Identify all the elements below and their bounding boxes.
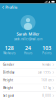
button[interactable]: Birthday <box>0 69 56 77</box>
staticText: Sarah Miller <box>16 31 39 37</box>
button[interactable]: Set goal <box>0 92 56 99</box>
staticText: Hours <box>24 51 32 55</box>
button[interactable]: 128 <box>0 45 19 55</box>
staticText: Profile <box>5 5 17 10</box>
staticText: Height <box>3 78 13 82</box>
staticText: Female <box>42 63 51 66</box>
staticText: Weight <box>3 86 13 90</box>
button[interactable]: Weight <box>0 84 56 92</box>
button[interactable]: 24 <box>19 45 37 55</box>
staticText: 24 <box>25 44 31 51</box>
staticText: Birthday <box>3 71 14 74</box>
staticText: Jan 1995 <box>38 71 51 74</box>
staticText: 168 cm <box>41 78 51 82</box>
button[interactable]: 103 <box>37 45 56 55</box>
button[interactable]: Height <box>0 76 56 84</box>
staticText: Workouts <box>3 51 15 55</box>
staticText: Points <box>42 51 51 55</box>
button[interactable]: Gender <box>0 61 56 69</box>
staticText: Gender <box>3 63 14 66</box>
staticText: 8,000 <box>42 94 51 97</box>
staticText: 103 <box>42 44 51 51</box>
staticText: Set goal <box>3 94 14 97</box>
staticText: 57 kg <box>43 86 51 90</box>
staticText: 128 <box>5 44 14 51</box>
button[interactable]: Profile <box>0 3 20 11</box>
staticText: sarah.miller@mail.com <box>14 37 42 41</box>
